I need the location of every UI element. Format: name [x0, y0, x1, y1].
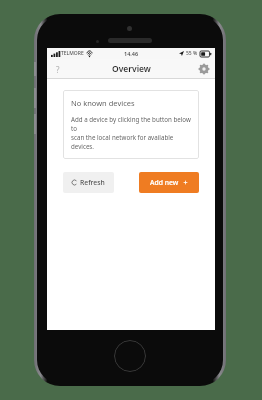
staticText: Add new — [150, 178, 179, 187]
staticText: Refresh — [80, 178, 105, 187]
other: Home — [114, 340, 146, 372]
button[interactable]: Add new — [139, 172, 199, 193]
button[interactable]: Help — [49, 60, 67, 78]
staticText: ? — [56, 64, 60, 75]
staticText: No known devices — [71, 98, 135, 108]
staticText: 14.46 — [124, 50, 139, 57]
button[interactable]: Settings — [196, 61, 212, 77]
staticText: Overview — [112, 63, 151, 75]
staticText: TELMORE — [61, 50, 84, 57]
staticText: 55 % — [186, 50, 198, 57]
button[interactable]: Refresh — [63, 172, 114, 193]
staticText: Add a device by clicking the button belo… — [71, 115, 191, 151]
